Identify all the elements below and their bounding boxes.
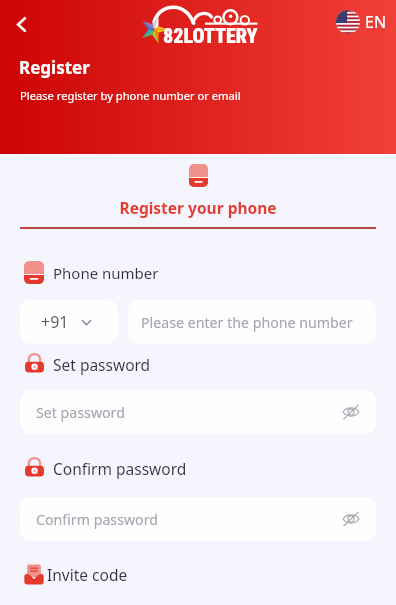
staticText: Invite code xyxy=(47,564,128,585)
button[interactable]: Show password xyxy=(338,506,364,532)
staticText: Set password xyxy=(36,403,125,422)
staticText: Confirm password xyxy=(36,510,158,529)
button[interactable]: Please enter the phone number xyxy=(128,300,376,344)
staticText: Phone number xyxy=(53,263,159,283)
staticText: Please register by phone number or email xyxy=(20,88,241,103)
button[interactable]: +91 xyxy=(20,300,118,344)
button[interactable]: Confirm password xyxy=(20,497,376,541)
button[interactable]: Back xyxy=(5,8,37,40)
staticText: Set password xyxy=(53,354,151,375)
button[interactable]: Set password xyxy=(20,390,376,434)
staticText: Register xyxy=(19,56,90,79)
button[interactable]: Show password xyxy=(338,399,364,425)
staticText: Confirm password xyxy=(53,458,187,479)
staticText: Register your phone xyxy=(0,197,396,218)
staticText: 82LOTTERY xyxy=(163,24,258,47)
staticText: +91 xyxy=(41,311,69,333)
button[interactable]: EN xyxy=(336,10,387,34)
staticText: Please enter the phone number xyxy=(141,313,353,332)
staticText: EN xyxy=(365,11,387,33)
